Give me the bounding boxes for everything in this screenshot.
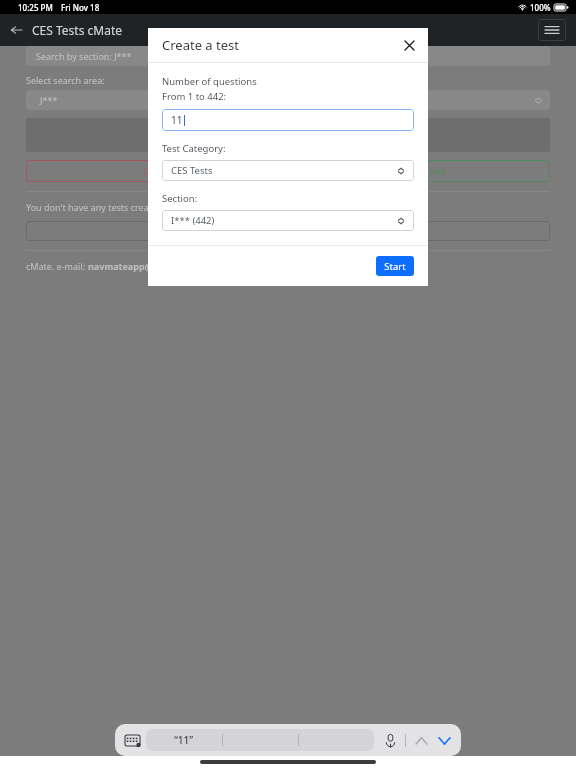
button[interactable]: Hide keyboard [434, 730, 454, 750]
staticText: Delete [143, 165, 171, 177]
staticText: J*** [40, 94, 58, 106]
button[interactable]: I*** (442) [162, 210, 414, 231]
button[interactable]: Keyboard settings [122, 730, 142, 750]
staticText: Section: [162, 192, 198, 205]
staticText: 10:25 PM [18, 2, 53, 13]
button[interactable]: Start [376, 256, 414, 276]
button[interactable]: Close [398, 34, 420, 56]
staticText: Start [384, 260, 406, 273]
staticText: Fri Nov 18 [61, 2, 100, 13]
staticText: I*** (442) [171, 214, 215, 227]
staticText: Test Category: [162, 142, 226, 155]
staticText: Search by section: J*** [36, 50, 132, 62]
button[interactable]: Search by section: J*** [26, 46, 550, 66]
button[interactable]: “11” [174, 733, 194, 747]
staticText: navmateapp@gmail.com [88, 260, 200, 272]
button[interactable]: 11 [162, 109, 414, 131]
staticText: Create a test [162, 36, 239, 54]
staticText: Select search area: [26, 74, 105, 86]
button[interactable]: Create a test [288, 160, 550, 182]
staticText: From 1 to 442: [162, 90, 227, 103]
button[interactable]: J*** [26, 90, 550, 110]
button[interactable] [26, 221, 550, 241]
button[interactable]: CES Tests [162, 160, 414, 181]
staticText: Create a test [392, 165, 446, 177]
button[interactable]: Back [4, 18, 28, 42]
staticText: CES Tests cMate [32, 22, 122, 38]
staticText: cMate. e-mail: [26, 260, 88, 272]
staticText: 100% [530, 2, 551, 13]
staticText: CES Tests [171, 164, 213, 177]
button[interactable]: Delete [26, 160, 288, 182]
button[interactable]: Dictate [380, 730, 400, 750]
staticText: 11 [171, 113, 183, 127]
staticText: You don't have any tests created yet [26, 201, 178, 213]
staticText: Number of questions [162, 75, 257, 88]
button[interactable]: Previous [411, 730, 431, 750]
button[interactable]: Menu [538, 19, 566, 41]
